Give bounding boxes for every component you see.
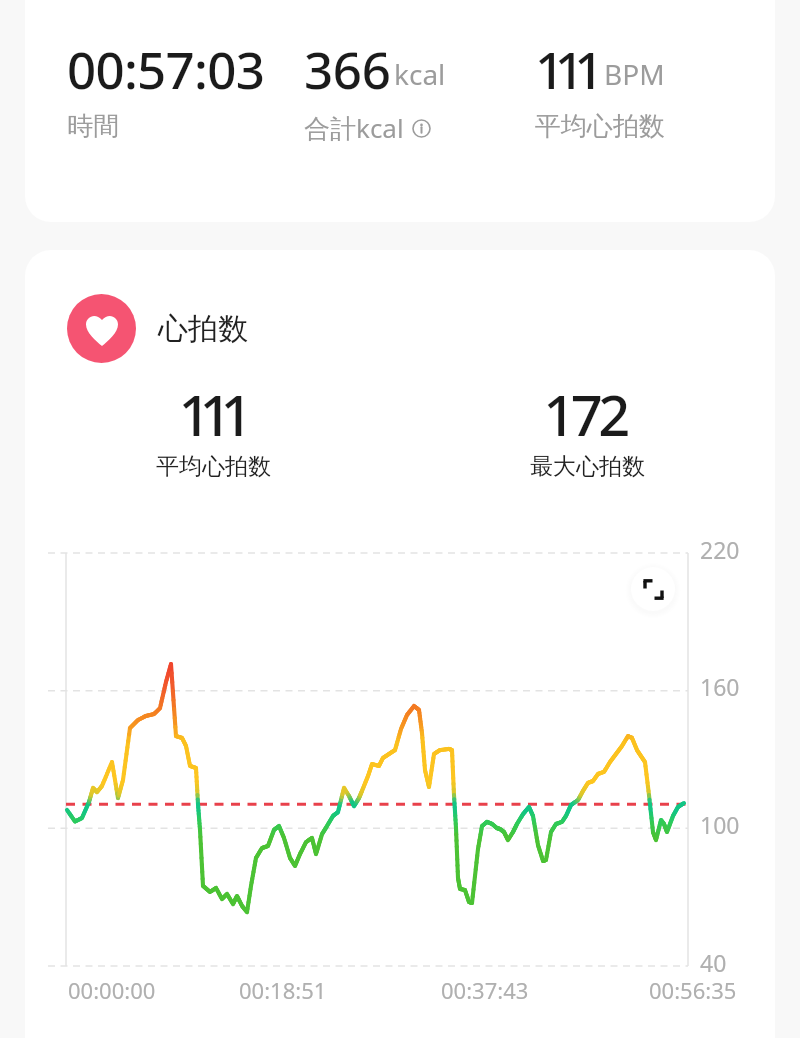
staticText: 心拍数 [158,310,248,348]
staticText: 最大心拍数 [530,452,645,481]
staticText: 220 [700,534,740,565]
staticText: 172 [543,376,626,452]
staticText: kcal [394,55,446,93]
staticText: 時間 [67,110,119,143]
staticText: 111 [535,34,595,103]
button[interactable]: 心拍数 [67,294,248,363]
button[interactable]: Expand chart [625,561,681,617]
staticText: 111 [178,376,242,452]
staticText: 366 [304,34,391,103]
staticText: 00:57:03 [67,34,265,103]
staticText: 平均心拍数 [535,110,665,143]
staticText: 合計kcal [304,110,404,146]
staticText: 40 [700,947,727,978]
staticText: 00:18:51 [239,975,327,1005]
staticText: 100 [700,809,740,840]
staticText: BPM [604,55,665,93]
staticText: 160 [700,671,740,702]
staticText: 00:37:43 [441,975,529,1005]
staticText: 00:00:00 [68,975,156,1005]
button[interactable]: Information about total kcal [409,116,433,140]
staticText: 00:56:35 [649,975,737,1005]
staticText: 平均心拍数 [156,452,271,481]
